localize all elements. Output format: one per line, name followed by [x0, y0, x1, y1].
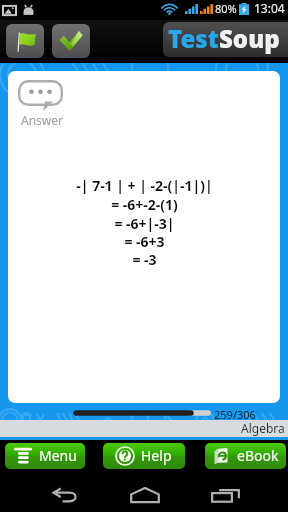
button[interactable]: Answer — [18, 80, 63, 127]
button[interactable]: Mark answered — [52, 24, 90, 58]
staticText: = -6+|-3| — [114, 214, 175, 232]
staticText: Menu — [39, 446, 77, 465]
staticText: Soup — [219, 22, 280, 55]
button[interactable]: Back — [32, 478, 96, 512]
staticText: Help — [141, 446, 172, 465]
staticText: = -3 — [132, 250, 157, 268]
button[interactable]: Test — [163, 22, 288, 57]
button[interactable]: Help — [103, 443, 185, 469]
staticText: 13:04 — [254, 0, 285, 16]
button[interactable]: Menu — [5, 443, 85, 469]
button[interactable]: Flag question — [6, 24, 44, 58]
staticText: Answer — [21, 112, 63, 128]
button[interactable]: 259/306 — [0, 404, 288, 420]
staticText: -| 7-1 | + | -2-(|-1|)| — [76, 176, 213, 195]
button[interactable]: Recent apps — [193, 478, 257, 512]
staticText: 259/306 — [214, 407, 256, 422]
staticText: 80% — [215, 1, 237, 16]
button[interactable]: eBook — [205, 443, 286, 469]
staticText: Test — [168, 22, 219, 55]
button[interactable]: Home — [113, 478, 177, 512]
staticText: Algebra — [241, 420, 285, 436]
staticText: = -6+-2-(1) — [111, 195, 178, 214]
staticText: eBook — [237, 446, 279, 465]
staticText: = -6+3 — [124, 232, 165, 250]
